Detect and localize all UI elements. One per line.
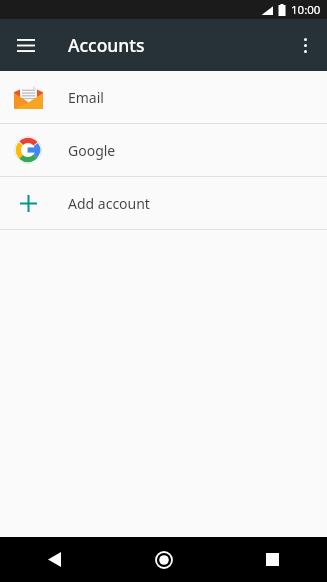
staticText: 10:00 [291,2,321,18]
staticText: Add account [68,194,150,213]
button[interactable]: Open navigation drawer [9,28,43,62]
button[interactable]: Back [0,537,109,582]
button[interactable]: Google [0,124,327,176]
staticText: Accounts [68,33,145,57]
button[interactable]: Add account [0,177,327,229]
button[interactable]: Recent apps [218,537,327,582]
button[interactable]: Email [0,71,327,123]
staticText: Google [68,141,116,160]
button[interactable]: Home [109,537,218,582]
button[interactable]: More options [287,27,323,63]
staticText: Email [68,88,104,107]
